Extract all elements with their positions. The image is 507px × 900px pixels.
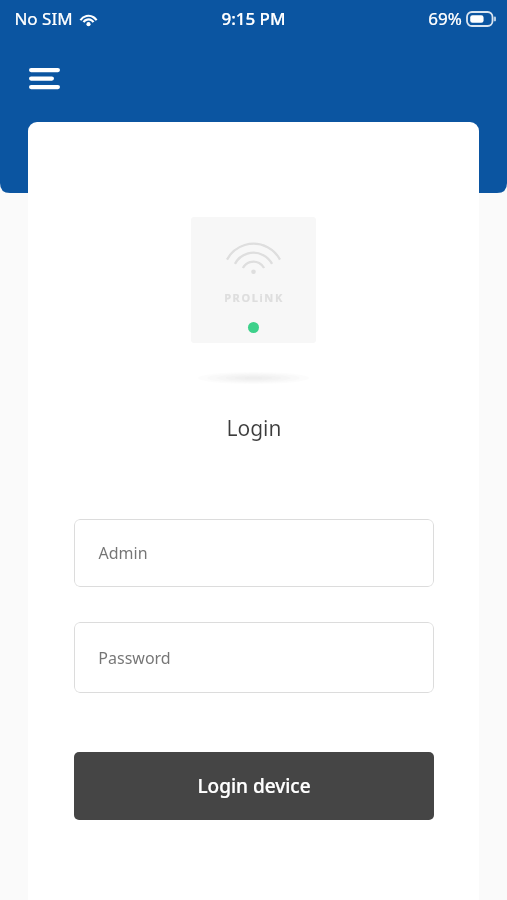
staticText: 9:15 PM (221, 7, 286, 30)
button[interactable]: Admin (74, 519, 434, 587)
staticText: 69% (428, 7, 462, 30)
staticText: Login device (197, 773, 311, 799)
staticText: Admin (98, 542, 148, 564)
staticText: Password (98, 647, 171, 669)
button[interactable]: Password (74, 622, 434, 693)
staticText: Login (226, 414, 282, 443)
staticText: PROLiNK (224, 290, 284, 305)
staticText: No SIM (14, 7, 73, 30)
button[interactable]: Open navigation menu (22, 55, 66, 97)
button[interactable]: Login device (74, 752, 434, 820)
